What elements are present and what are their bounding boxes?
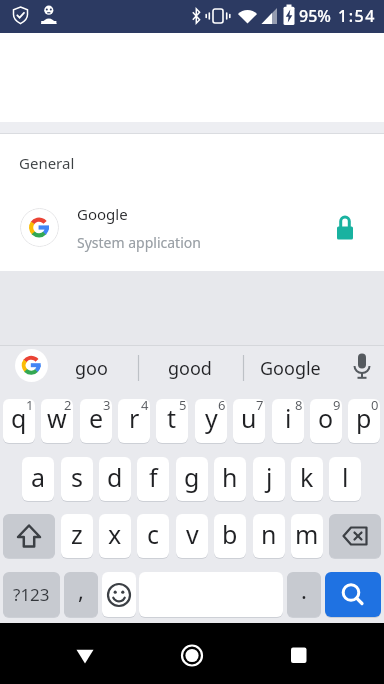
staticText: . [301, 575, 307, 605]
button[interactable]: d [99, 457, 131, 501]
staticText: i [285, 401, 292, 435]
staticText: 6 [218, 396, 226, 414]
staticText: h [222, 460, 238, 494]
button[interactable] [41, 399, 73, 443]
button[interactable]: x [99, 514, 131, 558]
button[interactable]: n [253, 514, 285, 558]
button[interactable]: v [176, 514, 208, 558]
staticText: r [129, 401, 140, 435]
staticText: goo [75, 356, 108, 381]
button[interactable]: b [214, 514, 246, 558]
staticText: q [11, 401, 27, 435]
staticText: Google [77, 204, 128, 224]
button[interactable]: f [137, 457, 169, 501]
button[interactable]: g [176, 457, 208, 501]
button[interactable]: k [291, 457, 323, 501]
staticText: 95% [299, 5, 331, 27]
button[interactable] [233, 399, 265, 443]
staticText: u [241, 401, 257, 435]
button[interactable] [162, 633, 222, 678]
button[interactable] [310, 399, 342, 443]
button[interactable] [156, 399, 188, 443]
staticText: 8 [295, 396, 303, 414]
staticText: 7 [256, 396, 264, 414]
staticText: t [167, 401, 177, 435]
button[interactable]: a [22, 457, 54, 501]
button[interactable] [102, 572, 136, 617]
button[interactable]: m [291, 514, 323, 558]
staticText: m [295, 517, 319, 551]
staticText: x [108, 517, 122, 551]
staticText: v [186, 517, 199, 551]
staticText: n [261, 517, 277, 551]
button[interactable] [3, 514, 55, 558]
button[interactable]: z [61, 514, 93, 558]
staticText: k [300, 460, 314, 494]
staticText: o [318, 401, 334, 435]
button[interactable]: . [287, 572, 321, 617]
staticText: j [266, 460, 273, 494]
button[interactable]: Google [0, 196, 384, 260]
staticText: 4 [141, 396, 149, 414]
staticText: c [147, 517, 160, 551]
button[interactable] [195, 399, 227, 443]
staticText: y [205, 401, 218, 435]
staticText: 3 [103, 396, 111, 414]
button[interactable]: l [329, 457, 361, 501]
button[interactable] [346, 350, 378, 382]
button[interactable] [329, 514, 381, 558]
staticText: b [222, 517, 238, 551]
staticText: good [168, 356, 212, 381]
button[interactable]: good [150, 354, 230, 382]
button[interactable] [348, 399, 380, 443]
staticText: 0 [371, 396, 379, 414]
button[interactable] [3, 399, 35, 443]
staticText: ?123 [13, 583, 50, 606]
staticText: s [71, 460, 83, 494]
staticText: g [184, 460, 200, 494]
staticText: 2 [64, 396, 72, 414]
staticText: , [78, 575, 84, 605]
button[interactable]: goo [56, 354, 126, 382]
button[interactable]: Google [250, 354, 330, 382]
button[interactable] [268, 633, 328, 678]
staticText: z [71, 517, 83, 551]
staticText: f [149, 460, 158, 494]
button[interactable]: , [64, 572, 98, 617]
button[interactable] [55, 633, 115, 678]
button[interactable]: h [214, 457, 246, 501]
staticText: e [89, 401, 104, 435]
button[interactable]: s [61, 457, 93, 501]
staticText: System application [77, 233, 201, 252]
button[interactable]: j [253, 457, 285, 501]
button[interactable] [118, 399, 150, 443]
staticText: a [31, 460, 46, 494]
staticText: Google [260, 356, 321, 381]
staticText: p [356, 401, 372, 435]
button[interactable] [325, 572, 381, 617]
button[interactable]: ?123 [3, 572, 60, 617]
staticText: 1:54 [338, 5, 376, 27]
staticText: 1 [26, 396, 34, 414]
staticText: 5 [179, 396, 187, 414]
staticText: l [342, 460, 349, 494]
button[interactable] [15, 349, 48, 382]
staticText: w [47, 401, 67, 435]
staticText: d [107, 460, 123, 494]
button[interactable] [272, 399, 304, 443]
staticText: General [19, 153, 75, 173]
button[interactable] [80, 399, 112, 443]
staticText: 9 [333, 396, 341, 414]
button[interactable]: c [137, 514, 169, 558]
